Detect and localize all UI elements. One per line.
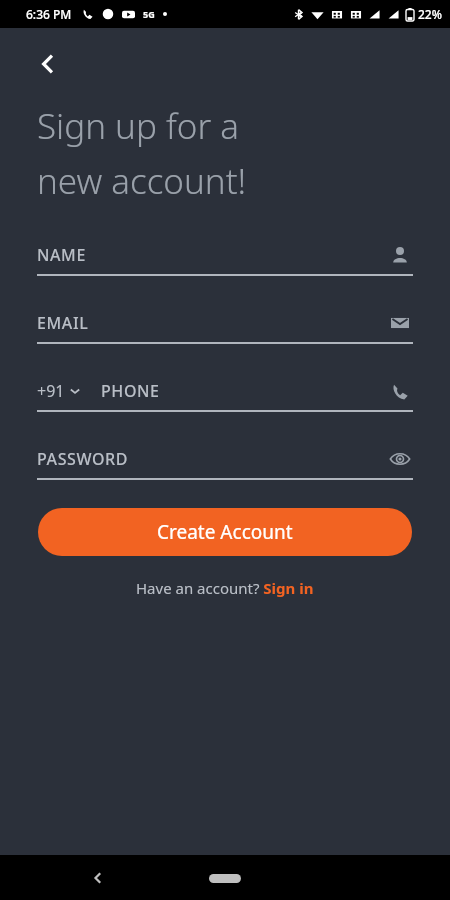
button[interactable]: Back [78, 858, 118, 898]
staticText: Have an account? Sign in [136, 578, 314, 598]
staticText: EMAIL [37, 312, 89, 334]
button[interactable]: Show password [387, 446, 413, 472]
button[interactable]: Email [387, 310, 413, 336]
button[interactable]: EMAIL [37, 310, 413, 344]
button[interactable]: Create Account [38, 508, 412, 556]
staticText: +91 [37, 380, 65, 402]
staticText: NAME [37, 244, 86, 266]
button[interactable]: Have an account? Sign in [124, 574, 326, 602]
button[interactable]: Back [26, 42, 70, 86]
staticText: Sign up for a new account! [37, 102, 247, 204]
staticText: 6:36 PM [26, 6, 72, 22]
staticText: PASSWORD [37, 448, 129, 470]
button[interactable]: Home [195, 865, 255, 891]
button[interactable]: Name [387, 242, 413, 268]
staticText: 22% [418, 6, 442, 22]
button[interactable]: PASSWORD [37, 446, 413, 480]
button[interactable]: +91 [37, 378, 413, 412]
staticText: Create Account [157, 519, 293, 545]
button[interactable]: NAME [37, 242, 413, 276]
staticText: 5G [143, 8, 155, 20]
button[interactable]: Phone [387, 378, 413, 404]
staticText: PHONE [101, 380, 160, 402]
